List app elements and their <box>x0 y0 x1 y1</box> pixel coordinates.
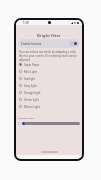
staticText: Sepia Paper <box>24 63 40 67</box>
button[interactable]: Enable feature <box>69 41 78 46</box>
button[interactable]: Green light <box>16 96 82 103</box>
button[interactable]: Enable feature <box>18 39 80 48</box>
staticText: Starlight <box>24 77 36 81</box>
button[interactable]: Sepia Paper <box>16 61 82 68</box>
staticText: 1:38 <box>23 21 29 25</box>
staticText: Enable feature <box>21 42 42 46</box>
staticText: Bright filter <box>37 32 61 38</box>
button[interactable]: Orange light <box>16 89 82 96</box>
staticText: You can reduce eye strain by adapting a … <box>19 50 79 62</box>
staticText: Bloom Light <box>24 105 40 109</box>
button[interactable]: Grey light <box>16 82 82 89</box>
staticText: Intensity level <box>18 116 34 119</box>
staticText: Orange light <box>24 91 41 95</box>
button[interactable]: Bloom Light <box>16 103 82 110</box>
button[interactable]: Mist Light <box>16 68 82 75</box>
staticText: Green light <box>24 98 39 102</box>
button[interactable]: Starlight <box>16 75 82 82</box>
staticText: Mist Light <box>24 70 37 74</box>
staticText: Grey light <box>24 84 37 88</box>
